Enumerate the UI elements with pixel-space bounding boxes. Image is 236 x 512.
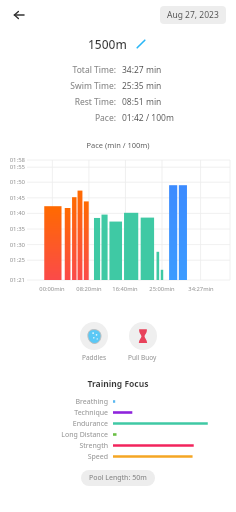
staticText: 34:27min [185,285,217,293]
staticText: 01:50 [1,178,25,186]
staticText: 25:35 min [122,80,162,92]
staticText: 01:42 / 100m [122,112,174,124]
staticText: 08:51 min [122,96,162,108]
staticText: 01:45 [1,194,25,202]
staticText: Rest Time: [0,96,116,108]
button[interactable]: Paddles [78,320,110,364]
staticText: 01:58 [1,156,25,164]
staticText: 25:00min [146,285,178,293]
button[interactable]: Edit distance [134,37,148,51]
staticText: 01:21 [1,276,25,284]
staticText: Technique [0,408,108,418]
button[interactable]: Pool Length: 50m [81,470,155,486]
staticText: Total Time: [0,64,116,76]
staticText: 01:25 [1,256,25,264]
staticText: 00:00min [36,285,68,293]
staticText: 01:35 [1,225,25,233]
staticText: Endurance [0,419,108,429]
staticText: 01:30 [1,241,25,249]
staticText: 08:20min [73,285,105,293]
staticText: Breathing [0,397,108,407]
staticText: Training Focus [0,378,236,390]
staticText: Pull Buoy [128,353,157,362]
staticText: Swim Time: [0,80,116,92]
staticText: Pace: [0,112,116,124]
staticText: Strength [0,441,108,451]
staticText: Paddles [82,353,107,362]
staticText: 34:27 min [122,64,162,76]
staticText: Pool Length: 50m [89,473,147,483]
staticText: Speed [0,452,108,462]
staticText: Long Distance [0,430,108,440]
staticText: 01:55 [1,163,25,171]
staticText: Aug 27, 2023 [167,9,219,21]
staticText: 16:40min [109,285,141,293]
button[interactable]: Pull Buoy [126,320,159,364]
staticText: 01:40 [1,209,25,217]
button[interactable]: Aug 27, 2023 [160,6,226,24]
button[interactable]: Back [8,4,30,26]
staticText: Pace (min / 100m) [0,140,236,150]
staticText: 1500m [88,36,127,52]
